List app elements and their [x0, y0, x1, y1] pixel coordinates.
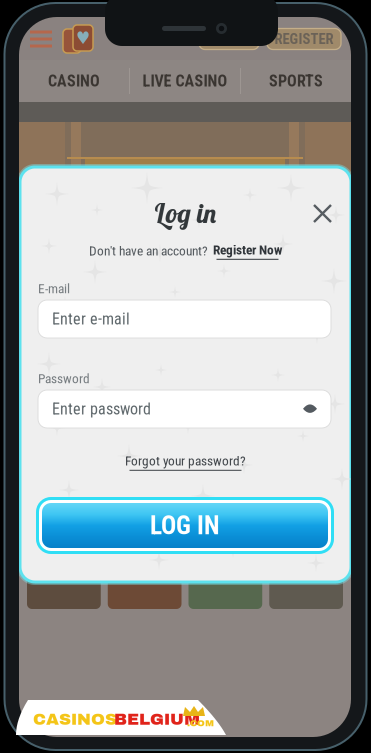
staticText: ♥ — [76, 28, 90, 48]
staticText: SEE ALL (989) — [248, 498, 330, 516]
staticText: .COM — [187, 718, 214, 728]
staticText: Log in — [153, 196, 217, 230]
button[interactable]: SEE ALL (989) — [248, 498, 341, 516]
staticText: CASINO — [48, 72, 100, 90]
staticText: 2 — [143, 413, 165, 463]
staticText: SPORTS — [269, 72, 323, 90]
staticText: BELGIUM — [114, 710, 200, 728]
staticText: Enter password — [52, 400, 151, 418]
button[interactable]: Close — [306, 197, 339, 230]
button[interactable]: Register Now — [213, 242, 282, 260]
staticText: NEW — [29, 494, 68, 519]
staticText: Forgot your password? — [125, 453, 246, 469]
button[interactable]: Forgot your password? — [20, 454, 351, 470]
staticText: Password — [38, 371, 90, 387]
staticText: CASINO WELCOME BONUS — [92, 163, 277, 183]
button[interactable]: CASINO — [19, 60, 129, 102]
staticText: E-mail — [38, 281, 70, 297]
button[interactable]: LOGIN — [199, 28, 259, 49]
staticText: LOGIN — [210, 30, 248, 48]
staticText: 1 — [35, 413, 57, 463]
button[interactable]: SPORTS — [241, 60, 351, 102]
staticText: CASINOS — [33, 710, 117, 728]
button[interactable]: Menu — [25, 24, 57, 54]
button[interactable]: LIVE CASINO — [130, 60, 240, 102]
staticText: Register Now — [213, 242, 282, 258]
staticText: REGISTER — [274, 30, 333, 48]
button[interactable]: REGISTER — [267, 28, 341, 49]
button[interactable]: LOG IN — [36, 497, 334, 554]
staticText: LIVE CASINO — [142, 72, 227, 90]
staticText: Don't have an account? — [89, 243, 208, 259]
staticText: LOG IN — [150, 511, 220, 540]
staticText: 3 — [250, 413, 272, 463]
staticText: Enter e-mail — [52, 310, 130, 328]
